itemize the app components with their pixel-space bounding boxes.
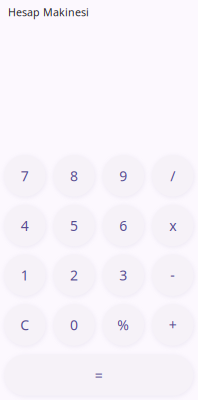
staticText: 2 bbox=[70, 266, 78, 285]
button[interactable]: / bbox=[152, 155, 193, 196]
button[interactable]: 9 bbox=[103, 155, 144, 196]
button[interactable]: 4 bbox=[4, 205, 45, 246]
button[interactable]: 5 bbox=[53, 205, 95, 246]
staticText: 1 bbox=[21, 266, 29, 285]
staticText: 3 bbox=[119, 266, 127, 285]
button[interactable]: 1 bbox=[4, 254, 45, 296]
staticText: = bbox=[95, 366, 103, 385]
staticText: C bbox=[20, 315, 29, 334]
staticText: Hesap Makinesi bbox=[8, 5, 89, 19]
button[interactable]: 0 bbox=[53, 304, 95, 346]
button[interactable]: % bbox=[103, 304, 144, 346]
staticText: 7 bbox=[21, 166, 29, 185]
button[interactable]: - bbox=[152, 254, 193, 296]
staticText: 4 bbox=[21, 216, 29, 235]
staticText: 6 bbox=[119, 216, 127, 235]
staticText: + bbox=[169, 315, 177, 334]
staticText: x bbox=[169, 216, 176, 235]
staticText: / bbox=[170, 166, 175, 185]
staticText: 9 bbox=[119, 166, 127, 185]
staticText: - bbox=[170, 266, 175, 285]
staticText: 5 bbox=[70, 216, 78, 235]
button[interactable]: 3 bbox=[103, 254, 144, 296]
button[interactable]: 6 bbox=[103, 205, 144, 246]
staticText: % bbox=[117, 315, 129, 334]
button[interactable]: 2 bbox=[53, 254, 95, 296]
staticText: 0 bbox=[70, 315, 78, 334]
button[interactable]: = bbox=[4, 355, 193, 396]
button[interactable]: x bbox=[152, 205, 193, 246]
button[interactable]: + bbox=[152, 304, 193, 346]
button[interactable]: 8 bbox=[53, 155, 95, 196]
button[interactable]: C bbox=[4, 304, 45, 346]
button[interactable]: 7 bbox=[4, 155, 45, 196]
staticText: 8 bbox=[70, 166, 78, 185]
